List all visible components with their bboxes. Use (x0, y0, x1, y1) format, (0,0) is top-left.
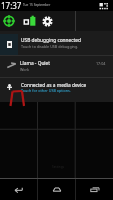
button[interactable]: Connected as a media device (0, 78, 113, 102)
staticText: Tue 15 September (23, 3, 51, 7)
button[interactable]: Back (0, 179, 37, 200)
staticText: Touch for other USB options. (21, 88, 71, 93)
staticText: 17:37 (1, 0, 22, 11)
staticText: Llama - Quiet (20, 60, 51, 67)
button[interactable]: Llama - Quiet (0, 56, 113, 78)
button[interactable]: Settings (38, 11, 57, 31)
staticText: Settings (52, 165, 65, 169)
staticText: 17:04 (96, 61, 106, 66)
staticText: Work (20, 67, 30, 72)
staticText: Connected as a media device (21, 82, 87, 89)
button[interactable]: Battery (20, 11, 39, 31)
button[interactable]: Home (38, 179, 75, 200)
button[interactable]: Recent apps (76, 179, 113, 200)
staticText: USB debugging connected (21, 37, 81, 44)
staticText: Touch to disable USB debugging. (21, 44, 79, 49)
button[interactable]: USB debugging connected (0, 32, 113, 56)
button[interactable]: GPS (0, 11, 17, 31)
